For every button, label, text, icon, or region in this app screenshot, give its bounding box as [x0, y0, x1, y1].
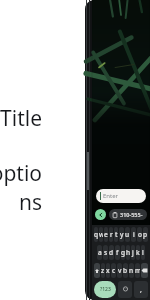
button[interactable]: z: [101, 263, 105, 278]
button[interactable]: ?123: [94, 281, 116, 298]
button[interactable]: g: [121, 245, 125, 260]
button[interactable]: l: [141, 245, 145, 260]
staticText: r: [110, 230, 113, 239]
button[interactable]: i: [131, 227, 136, 242]
staticText: p: [143, 230, 148, 239]
button[interactable]: options: [0, 159, 42, 217]
staticText: b: [123, 266, 128, 275]
staticText: h: [126, 248, 130, 257]
staticText: n: [129, 266, 134, 275]
staticText: i: [133, 230, 135, 239]
button[interactable]: h: [126, 245, 130, 260]
button[interactable]: t: [114, 227, 118, 242]
staticText: t: [115, 230, 118, 239]
staticText: z: [101, 266, 105, 275]
button[interactable]: Enter message: [96, 189, 146, 203]
staticText: f: [116, 248, 119, 257]
staticText: ,: [140, 285, 142, 295]
staticText: c: [112, 266, 116, 275]
staticText: q: [94, 230, 98, 239]
staticText: y: [120, 230, 124, 239]
staticText: a: [98, 248, 102, 257]
staticText: e: [104, 230, 108, 239]
staticText: u: [125, 230, 130, 239]
button[interactable]: 310-555-0168: [109, 209, 147, 220]
staticText: Title: [0, 104, 42, 133]
staticText: o: [138, 230, 142, 239]
button[interactable]: Title: [0, 104, 42, 133]
button[interactable]: q: [94, 227, 98, 242]
staticText: g: [121, 248, 125, 257]
button[interactable]: a: [97, 245, 102, 260]
staticText: d: [109, 248, 114, 257]
button[interactable]: o: [137, 227, 142, 242]
button[interactable]: y: [119, 227, 124, 242]
staticText: 310-555-0168: [120, 211, 144, 218]
staticText: v: [118, 266, 122, 275]
staticText: options: [0, 159, 42, 217]
staticText: ?123: [100, 286, 111, 293]
button[interactable]: e: [104, 227, 108, 242]
staticText: j: [132, 248, 134, 257]
button[interactable]: f: [115, 245, 120, 260]
button[interactable]: u: [125, 227, 130, 242]
button[interactable]: Shift: [94, 263, 100, 278]
staticText: l: [142, 248, 144, 257]
button[interactable]: k: [136, 245, 140, 260]
button[interactable]: m: [135, 263, 140, 278]
staticText: m: [135, 266, 140, 275]
staticText: s: [104, 248, 108, 257]
button[interactable]: Emoji: [118, 281, 132, 298]
button[interactable]: Comma: [134, 281, 148, 298]
button[interactable]: v: [117, 263, 122, 278]
button[interactable]: d: [109, 245, 114, 260]
button[interactable]: x: [106, 263, 110, 278]
button[interactable]: b: [123, 263, 128, 278]
button[interactable]: p: [143, 227, 148, 242]
button[interactable]: j: [131, 245, 135, 260]
staticText: Enter message: [103, 192, 142, 200]
button[interactable]: Back: [95, 209, 106, 220]
staticText: w: [99, 230, 103, 239]
staticText: x: [106, 266, 110, 275]
button[interactable]: n: [129, 263, 134, 278]
staticText: k: [136, 248, 140, 257]
button[interactable]: w: [99, 227, 103, 242]
button[interactable]: s: [103, 245, 108, 260]
button[interactable]: c: [111, 263, 116, 278]
button[interactable]: Backspace: [141, 263, 148, 278]
button[interactable]: r: [109, 227, 113, 242]
